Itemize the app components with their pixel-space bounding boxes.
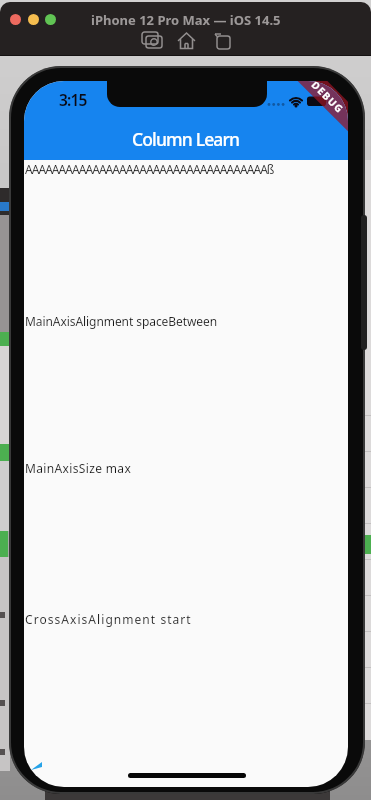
staticText: 3:15 (59, 89, 87, 110)
button[interactable] (142, 32, 163, 50)
staticText: MainAxisAlignment spaceBetween (25, 313, 218, 329)
staticText: DEBUG (309, 81, 347, 117)
staticText: MainAxisSize max (25, 460, 132, 476)
button[interactable] (28, 14, 39, 25)
button[interactable] (10, 14, 21, 25)
button[interactable] (128, 773, 246, 778)
button[interactable] (45, 14, 56, 25)
button[interactable] (177, 32, 196, 50)
button[interactable] (214, 32, 233, 50)
staticText: AAAAAAAAAAAAAAAAAAAAAAAAAAAAAAAAAAAAß (25, 161, 274, 177)
staticText: CrossAxisAlignment start (25, 611, 192, 627)
staticText: iPhone 12 Pro Max — iOS 14.5 (91, 11, 281, 29)
staticText: Column Learn (132, 127, 240, 151)
